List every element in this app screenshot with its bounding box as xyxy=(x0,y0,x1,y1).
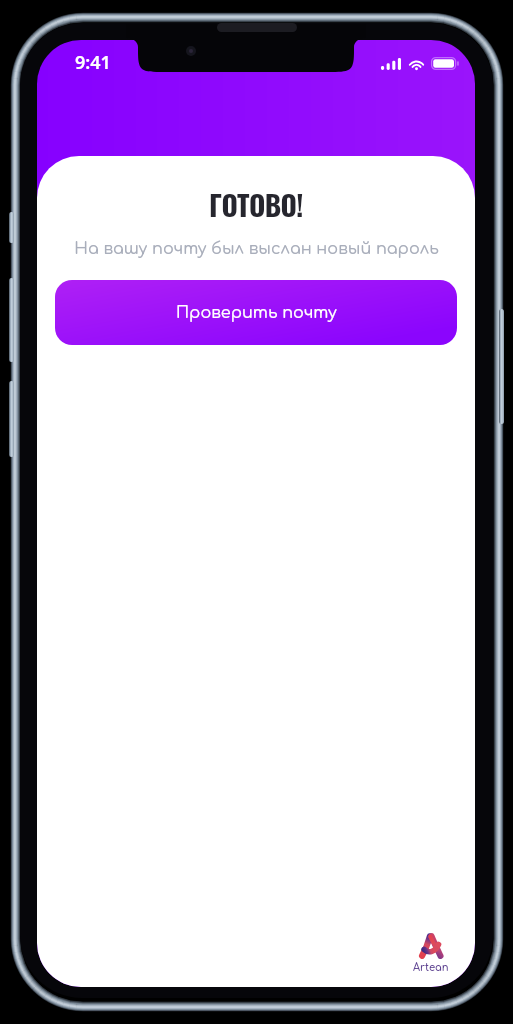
staticText: На вашу почту был выслан новый пароль xyxy=(74,240,439,258)
staticText: 9:41 xyxy=(75,50,111,74)
staticText: Artean xyxy=(413,962,449,973)
button[interactable]: Проверить почту xyxy=(55,280,457,345)
staticText: ГОТОВО! xyxy=(209,184,303,225)
staticText: Проверить почту xyxy=(176,304,337,322)
